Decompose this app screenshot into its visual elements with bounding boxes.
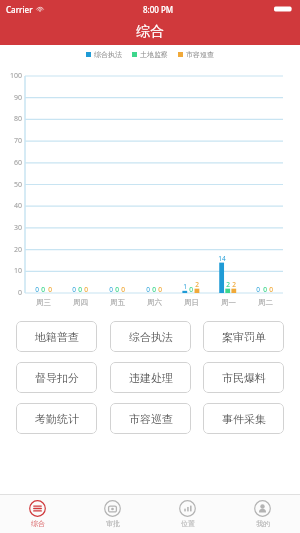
staticText: 周四 (73, 298, 88, 307)
staticText: 0 (152, 285, 156, 294)
staticText: 0 (84, 285, 88, 294)
staticText: 周三 (36, 298, 51, 307)
staticText: 0 (115, 285, 119, 294)
staticText: 事件采集 (222, 412, 266, 426)
staticText: 100 (9, 71, 22, 81)
staticText: 80 (13, 114, 22, 124)
staticText: 70 (13, 136, 22, 146)
staticText: 综合执法 (94, 50, 122, 59)
staticText: 30 (13, 223, 22, 233)
staticText: 综合执法 (129, 330, 173, 344)
staticText: Carrier (6, 4, 33, 15)
staticText: 0 (48, 285, 52, 294)
staticText: 0 (78, 285, 82, 294)
staticText: 案审罚单 (222, 330, 266, 344)
button[interactable]: 市民爆料 (203, 362, 284, 393)
staticText: 40 (13, 201, 22, 211)
staticText: 2 (226, 280, 230, 289)
button[interactable]: 事件采集 (203, 403, 284, 434)
staticText: 我的 (256, 519, 270, 528)
staticText: 90 (13, 93, 22, 103)
staticText: 10 (13, 266, 22, 276)
staticText: 周六 (147, 298, 162, 307)
button[interactable]: 督导扣分 (16, 362, 97, 393)
staticText: 0 (17, 288, 22, 298)
staticText: 1 (183, 282, 187, 291)
staticText: 8:00 PM (143, 4, 174, 15)
button[interactable]: 市容巡查 (110, 403, 191, 434)
staticText: 50 (13, 180, 22, 190)
staticText: 0 (109, 285, 113, 294)
staticText: 市容巡查 (129, 412, 173, 426)
staticText: 2 (232, 280, 236, 289)
button[interactable]: 审批 (75, 495, 150, 533)
staticText: 审批 (106, 519, 120, 528)
staticText: 0 (35, 285, 39, 294)
staticText: 0 (263, 285, 267, 294)
staticText: 考勤统计 (35, 412, 79, 426)
button[interactable]: 综合 (0, 495, 75, 533)
staticText: 土地监察 (140, 50, 168, 59)
staticText: 20 (13, 245, 22, 255)
staticText: 违建处理 (129, 371, 173, 385)
staticText: 0 (158, 285, 162, 294)
staticText: 0 (189, 285, 193, 294)
button[interactable]: 综合执法 (110, 321, 191, 352)
staticText: 周五 (110, 298, 125, 307)
staticText: 综合 (136, 23, 164, 41)
button[interactable]: 违建处理 (110, 362, 191, 393)
staticText: 地籍普查 (35, 330, 79, 344)
staticText: 0 (41, 285, 45, 294)
staticText: 0 (269, 285, 273, 294)
button[interactable]: 考勤统计 (16, 403, 97, 434)
staticText: 2 (195, 280, 199, 289)
staticText: 60 (13, 158, 22, 168)
staticText: 督导扣分 (35, 371, 79, 385)
button[interactable]: 位置 (150, 495, 225, 533)
staticText: 市容巡查 (186, 50, 214, 59)
staticText: 14 (218, 254, 226, 263)
staticText: 0 (256, 285, 260, 294)
staticText: 0 (121, 285, 125, 294)
button[interactable]: 地籍普查 (16, 321, 97, 352)
staticText: 0 (146, 285, 150, 294)
staticText: 位置 (181, 519, 195, 528)
staticText: 周日 (184, 298, 199, 307)
staticText: 周一 (221, 298, 236, 307)
button[interactable]: 我的 (225, 495, 300, 533)
staticText: 市民爆料 (222, 371, 266, 385)
button[interactable]: 案审罚单 (203, 321, 284, 352)
staticText: 综合 (31, 519, 45, 528)
staticText: 0 (72, 285, 76, 294)
staticText: 周二 (258, 298, 273, 307)
